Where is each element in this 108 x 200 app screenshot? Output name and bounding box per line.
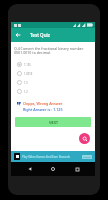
button[interactable]: 1.5 bbox=[11, 78, 95, 87]
staticText: NEXT bbox=[49, 120, 58, 125]
button[interactable]: Search bbox=[79, 133, 90, 144]
button[interactable]: INSTALL bbox=[82, 155, 92, 159]
staticText: Right Answer is : 1.125 bbox=[23, 107, 63, 112]
staticText: 1.2 bbox=[24, 90, 28, 94]
button[interactable]: 1.0010 bbox=[11, 69, 95, 78]
staticText: 1.125 bbox=[24, 63, 31, 67]
button[interactable]: Play Video Games And Earn Rewards bbox=[11, 151, 95, 162]
staticText: Oopps, Wrong Answer bbox=[23, 101, 63, 106]
button[interactable]: Navigate up bbox=[11, 28, 25, 42]
button[interactable]: 1.2 bbox=[11, 87, 95, 96]
staticText: Q.4 Convert the fractional binary number… bbox=[14, 46, 86, 55]
button[interactable]: NEXT bbox=[15, 117, 91, 127]
staticText: Test Quiz bbox=[30, 32, 50, 38]
staticText: 1.5 bbox=[24, 81, 28, 85]
button[interactable]: Home bbox=[48, 164, 58, 174]
button[interactable]: Back bbox=[25, 164, 35, 174]
button[interactable]: Recent apps bbox=[72, 164, 82, 174]
staticText: 1.0010 bbox=[24, 72, 33, 76]
button[interactable]: 1.125 bbox=[11, 60, 95, 69]
staticText: Play Video Games And Earn Rewards bbox=[22, 155, 71, 159]
staticText: INSTALL bbox=[83, 156, 92, 159]
